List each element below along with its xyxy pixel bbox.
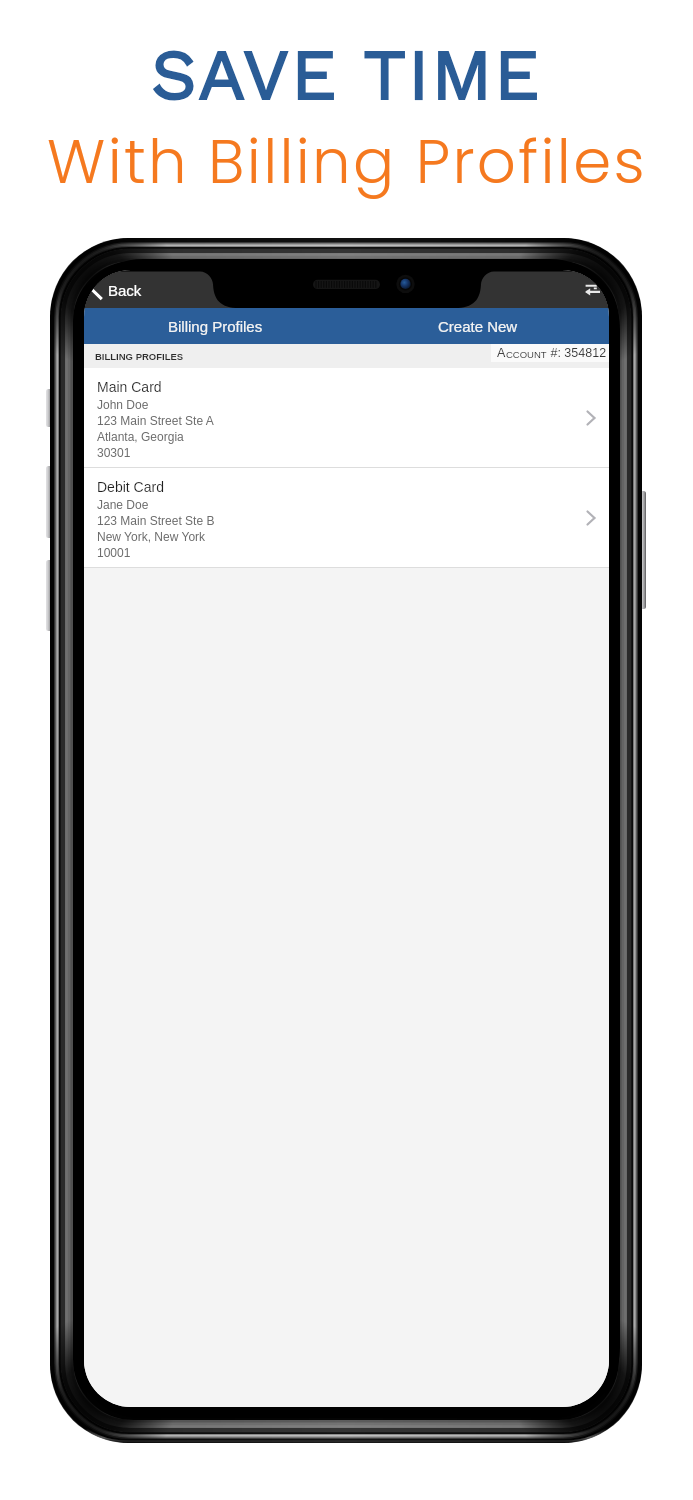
staticText: Main Card [97,379,162,395]
staticText: New York, New York [97,530,206,543]
staticText: 30301 [97,446,131,459]
button[interactable]: Main Card [84,368,609,467]
staticText: Atlanta, Georgia [97,430,184,443]
staticText: Jane Doe [97,498,149,511]
staticText: 10001 [97,546,131,559]
button[interactable]: Billing Profiles [84,308,346,344]
button[interactable]: Debit Card [84,468,609,567]
staticText: 123 Main Street Ste A [97,414,214,427]
button[interactable]: Back [89,270,155,308]
staticText: 123 Main Street Ste B [97,514,215,527]
staticText: John Doe [97,398,149,411]
staticText: #: 354812 [547,346,607,360]
staticText: Billing Profiles [168,318,263,335]
button[interactable]: Create New [346,308,609,344]
button[interactable]: Transfer [575,270,609,308]
staticText: Create New [438,318,518,335]
staticText: CCOUNT [506,349,547,360]
staticText: With Billing Profiles [47,119,647,204]
staticText: Back [108,282,142,299]
staticText: A [497,346,506,360]
staticText: SAVE TIME [151,33,542,116]
staticText: Debit Card [97,479,164,495]
staticText: BILLING PROFILES [95,351,184,362]
